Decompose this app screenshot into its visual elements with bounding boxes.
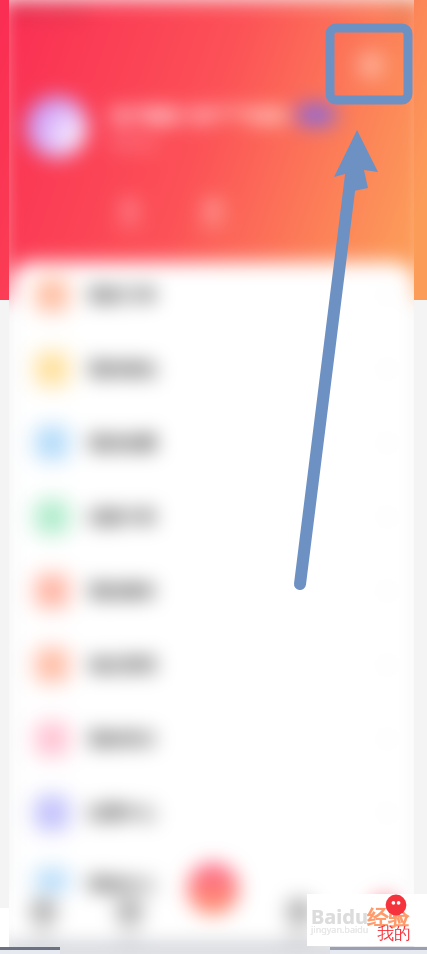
staticText: 我的积分: [88, 729, 156, 750]
staticText: 地址管理: [88, 655, 156, 676]
button[interactable]: 我的积分: [10, 702, 416, 776]
staticText: 普通会员: [110, 135, 158, 150]
button[interactable]: Settings: [350, 44, 392, 86]
button[interactable]: Membership: [296, 104, 336, 126]
staticText: 帮助中心: [88, 875, 156, 896]
staticText: 关注: [118, 216, 140, 230]
staticText: 我的服务: [88, 581, 156, 602]
staticText: 购物车: [285, 929, 315, 942]
staticText: 我的收藏: [88, 433, 156, 454]
staticText: jingyan.baidu: [311, 923, 369, 935]
staticText: 38: [204, 196, 222, 216]
button[interactable]: 优惠卡券: [10, 480, 416, 554]
button[interactable]: 我的订单: [10, 262, 416, 332]
staticText: 我的订单: [88, 285, 156, 306]
button[interactable]: 我的: [342, 893, 427, 948]
button[interactable]: 购物车: [257, 893, 342, 948]
button[interactable]: Add: [187, 863, 239, 915]
staticText: 12: [120, 196, 138, 216]
button[interactable]: 首页: [0, 893, 86, 948]
staticText: 经验: [367, 905, 409, 931]
staticText: Baidu: [311, 903, 368, 930]
staticText: 我的: [377, 923, 411, 944]
button[interactable]: 我的钱包: [10, 332, 416, 406]
staticText: 优惠卡券: [88, 507, 156, 528]
staticText: 我的: [375, 929, 395, 942]
button[interactable]: 分类: [86, 893, 172, 948]
button[interactable]: 地址管理: [10, 628, 416, 702]
staticText: 用户昵称 138****8888: [110, 104, 288, 127]
button[interactable]: 我的服务: [10, 554, 416, 628]
staticText: 设置中心: [88, 803, 156, 824]
staticText: 9:41: [393, 5, 411, 17]
button[interactable]: 帮助中心: [10, 850, 416, 920]
staticText: 我的钱包: [88, 359, 156, 380]
button[interactable]: 设置中心: [10, 776, 416, 850]
staticText: HDR 16.1K/s 4G: [16, 5, 87, 17]
button[interactable]: 我的收藏: [10, 406, 416, 480]
staticText: 粉丝: [202, 216, 224, 230]
